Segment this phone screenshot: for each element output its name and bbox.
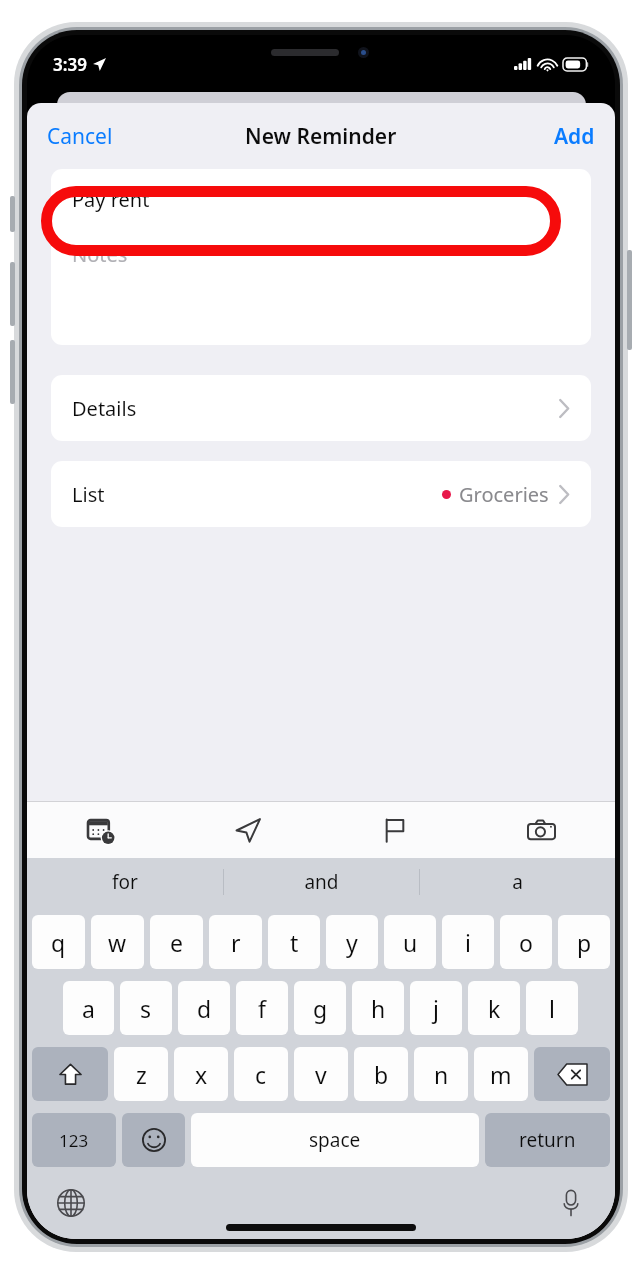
button[interactable]: l [526, 981, 578, 1035]
staticText: r [231, 927, 241, 958]
staticText: b [374, 1059, 389, 1090]
button[interactable]: Add date [27, 802, 174, 858]
button[interactable]: x [174, 1047, 228, 1101]
staticText: u [403, 927, 418, 958]
button[interactable]: c [234, 1047, 288, 1101]
staticText: Details [72, 395, 137, 422]
button[interactable]: and [224, 858, 419, 906]
staticText: j [433, 993, 439, 1024]
button[interactable]: Add location [174, 802, 321, 858]
button[interactable]: t [268, 915, 320, 969]
staticText: List [72, 481, 105, 508]
staticText: x [195, 1059, 208, 1090]
staticText: h [371, 993, 386, 1024]
button[interactable]: Change keyboard [49, 1181, 93, 1225]
staticText: m [490, 1059, 512, 1090]
staticText: Pay rent [72, 186, 150, 213]
button[interactable]: e [150, 915, 203, 969]
staticText: 3:39 [53, 53, 87, 76]
button[interactable]: Shift [32, 1047, 108, 1101]
button[interactable]: Details [51, 375, 591, 441]
staticText: f [258, 993, 266, 1024]
staticText: space [309, 1127, 361, 1153]
staticText: c [255, 1059, 267, 1090]
staticText: q [51, 927, 66, 958]
button[interactable]: Delete [534, 1047, 610, 1101]
button[interactable]: a [420, 858, 615, 906]
button[interactable]: for [27, 858, 223, 906]
button[interactable]: w [91, 915, 144, 969]
button[interactable]: b [354, 1047, 408, 1101]
staticText: t [290, 927, 299, 958]
staticText: Add [554, 122, 595, 151]
staticText: Groceries [459, 481, 549, 508]
button[interactable]: Dictate [549, 1181, 593, 1225]
button[interactable]: y [326, 915, 378, 969]
button[interactable]: Emoji [122, 1113, 185, 1167]
button[interactable]: space [191, 1113, 479, 1167]
staticText: for [112, 869, 138, 895]
staticText: New Reminder [245, 122, 397, 151]
button[interactable]: d [178, 981, 230, 1035]
button[interactable]: i [442, 915, 494, 969]
staticText: d [197, 993, 212, 1024]
button[interactable]: h [352, 981, 404, 1035]
button[interactable]: Pay rent [51, 169, 591, 229]
button[interactable]: g [294, 981, 346, 1035]
staticText: Notes [72, 241, 128, 268]
button[interactable]: o [500, 915, 552, 969]
button[interactable]: Notes [51, 229, 591, 345]
staticText: n [434, 1059, 449, 1090]
button[interactable]: v [294, 1047, 348, 1101]
button[interactable]: a [63, 981, 114, 1035]
button[interactable]: z [114, 1047, 168, 1101]
staticText: w [108, 927, 127, 958]
staticText: l [549, 993, 555, 1024]
button[interactable]: p [558, 915, 610, 969]
button[interactable]: f [236, 981, 288, 1035]
button[interactable]: Cancel [35, 114, 125, 159]
staticText: and [304, 869, 339, 895]
button[interactable]: return [485, 1113, 610, 1167]
staticText: a [512, 869, 523, 895]
staticText: y [346, 927, 358, 958]
button[interactable]: k [468, 981, 520, 1035]
button[interactable]: Add photo [468, 802, 615, 858]
button[interactable]: List [51, 461, 591, 527]
staticText: p [577, 927, 592, 958]
button[interactable]: r [209, 915, 262, 969]
button[interactable]: n [414, 1047, 468, 1101]
staticText: Cancel [47, 122, 113, 151]
staticText: g [313, 993, 328, 1024]
button[interactable]: m [474, 1047, 528, 1101]
button[interactable]: 123 [32, 1113, 116, 1167]
staticText: v [315, 1059, 327, 1090]
button[interactable]: u [384, 915, 436, 969]
staticText: i [465, 927, 471, 958]
staticText: 123 [59, 1129, 89, 1152]
staticText: s [140, 993, 152, 1024]
staticText: return [519, 1127, 576, 1153]
staticText: e [170, 927, 183, 958]
staticText: z [136, 1059, 147, 1090]
button[interactable]: Add [542, 114, 607, 159]
button[interactable]: s [120, 981, 172, 1035]
button[interactable]: Add flag [321, 802, 468, 858]
staticText: a [82, 993, 95, 1024]
button[interactable]: j [410, 981, 462, 1035]
staticText: k [488, 993, 501, 1024]
button[interactable]: q [32, 915, 85, 969]
staticText: o [519, 927, 533, 958]
